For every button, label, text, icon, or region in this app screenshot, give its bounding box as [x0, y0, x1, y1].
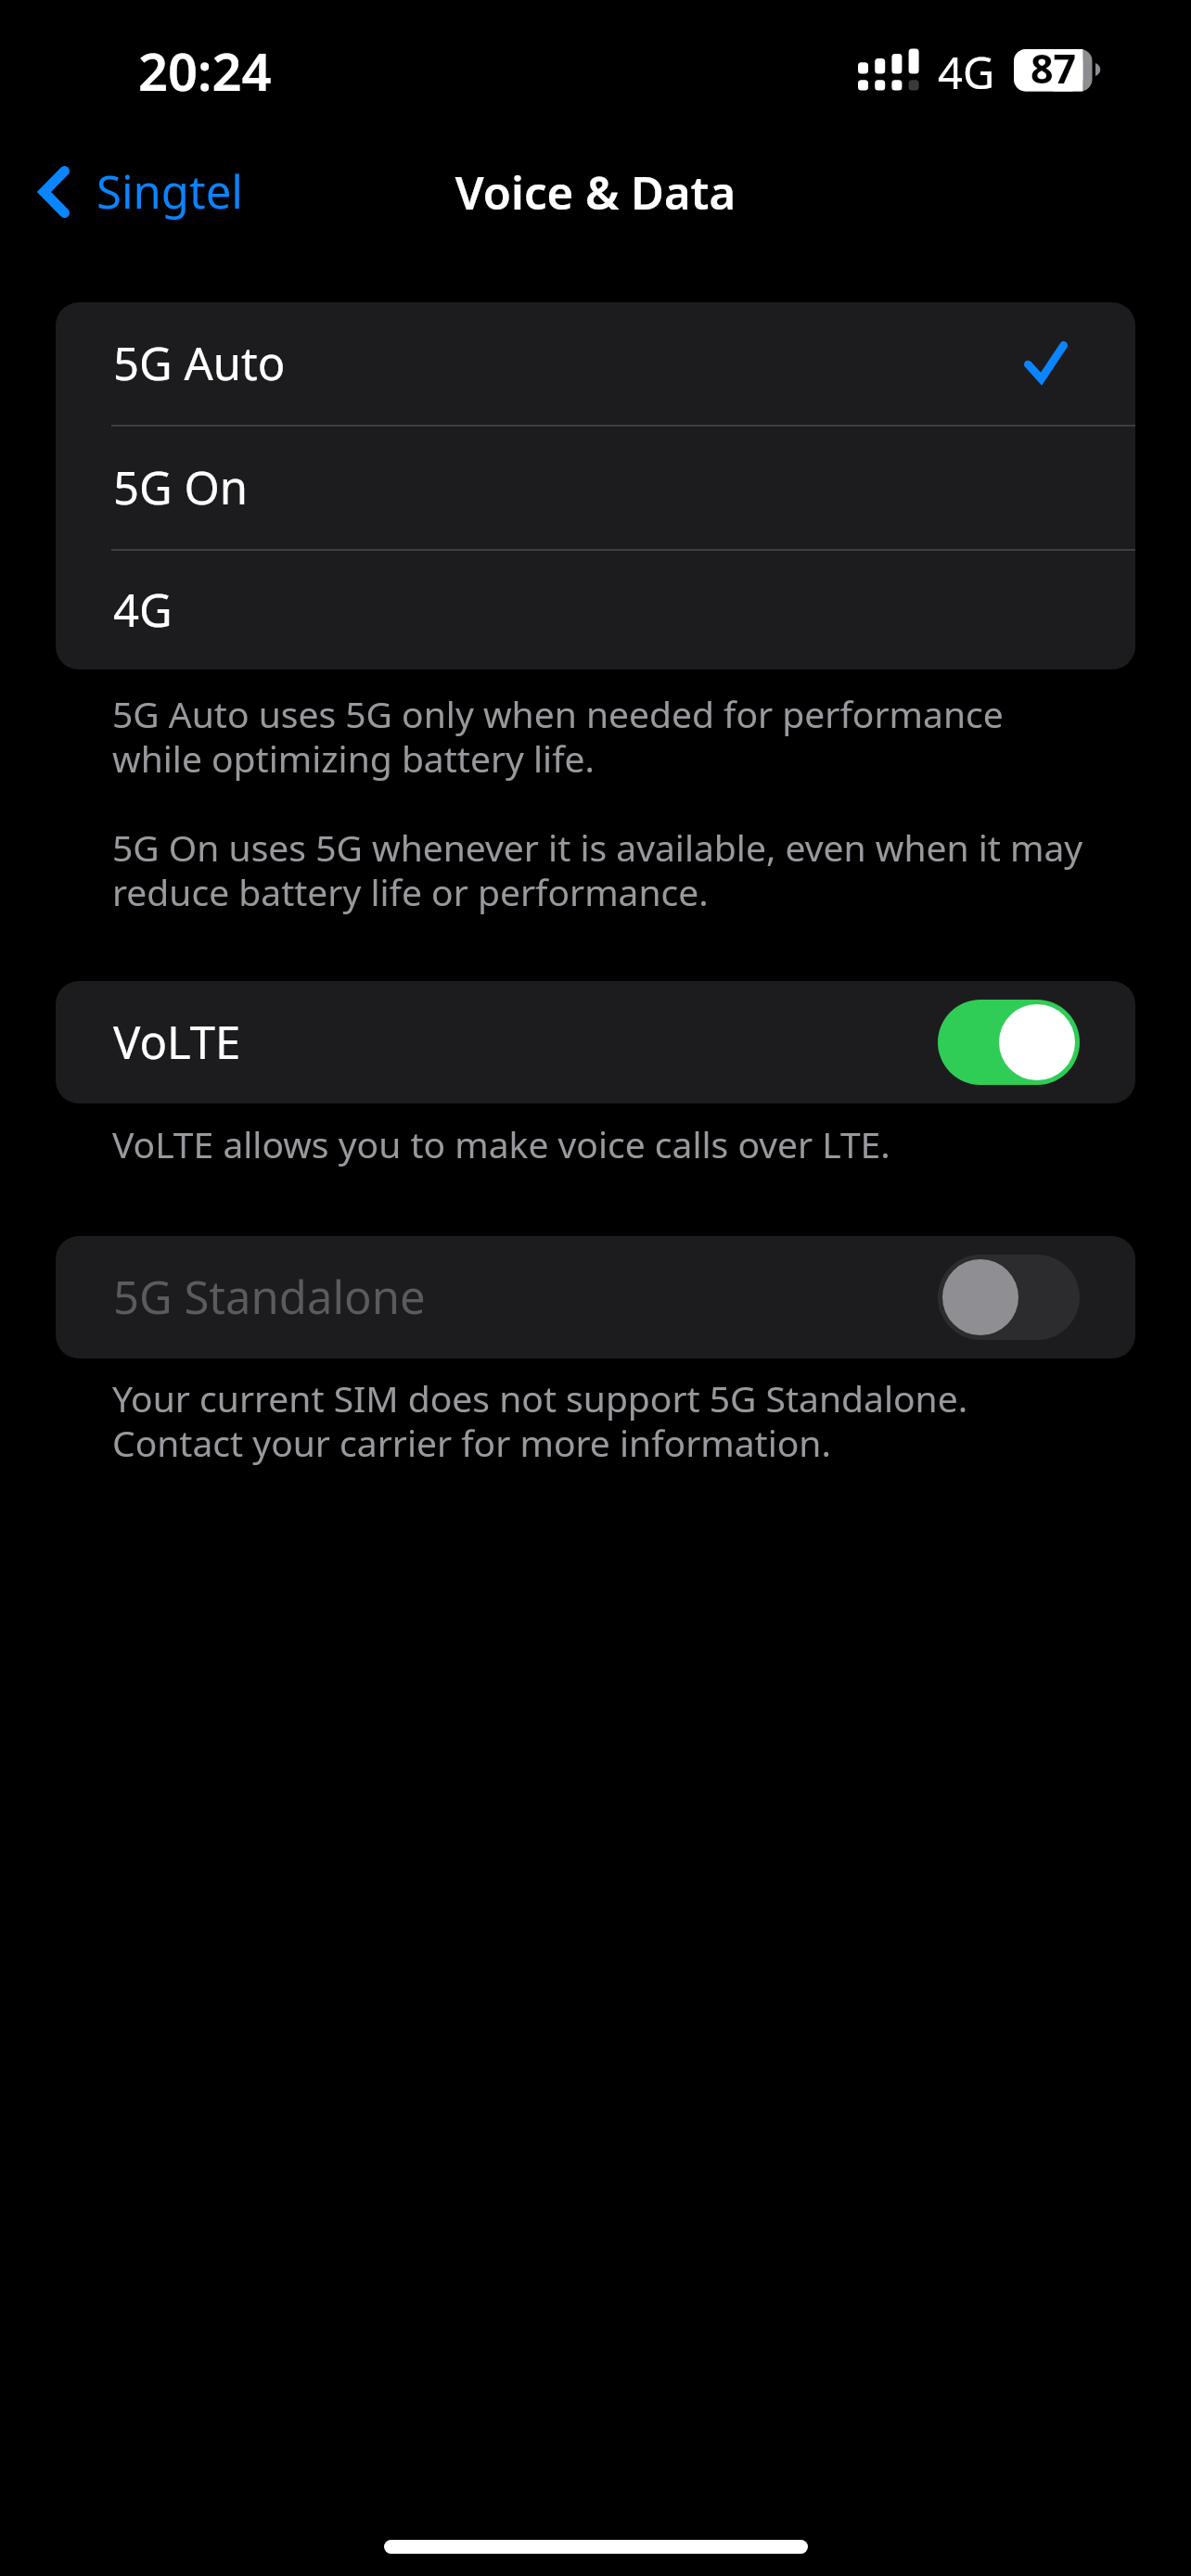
staticText: VoLTE: [113, 1014, 241, 1071]
button[interactable]: VoLTE: [56, 981, 1135, 1103]
button[interactable]: Back to Singtel: [20, 148, 257, 234]
staticText: VoLTE allows you to make voice calls ove…: [112, 1123, 1095, 1167]
staticText: Singtel: [96, 165, 243, 221]
staticText: 20:24: [138, 45, 272, 104]
staticText: Your current SIM does not support 5G Sta…: [112, 1377, 1095, 1466]
button[interactable]: 5G Standalone, off: [938, 1255, 1080, 1340]
staticText: 5G On uses 5G whenever it is available, …: [112, 826, 1095, 915]
button[interactable]: 5G On: [56, 427, 1135, 549]
button[interactable]: VoLTE, on: [938, 1000, 1080, 1085]
staticText: Voice & Data: [0, 164, 1191, 222]
other: Cellular signal strength: [858, 48, 918, 91]
staticText: 5G Auto uses 5G only when needed for per…: [112, 693, 1095, 782]
staticText: 5G Auto: [113, 335, 286, 392]
button[interactable]: 5G Auto: [56, 302, 1135, 425]
other: Battery 87 percent: [1014, 48, 1102, 92]
staticText: 87: [1031, 51, 1077, 92]
button[interactable]: 5G Standalone: [56, 1236, 1135, 1358]
staticText: 4G: [113, 581, 173, 639]
button[interactable]: 4G: [56, 551, 1135, 670]
other: Selected: [1024, 341, 1068, 383]
staticText: 4G: [938, 48, 995, 100]
staticText: 5G On: [113, 459, 248, 516]
staticText: 5G Standalone: [113, 1269, 426, 1326]
